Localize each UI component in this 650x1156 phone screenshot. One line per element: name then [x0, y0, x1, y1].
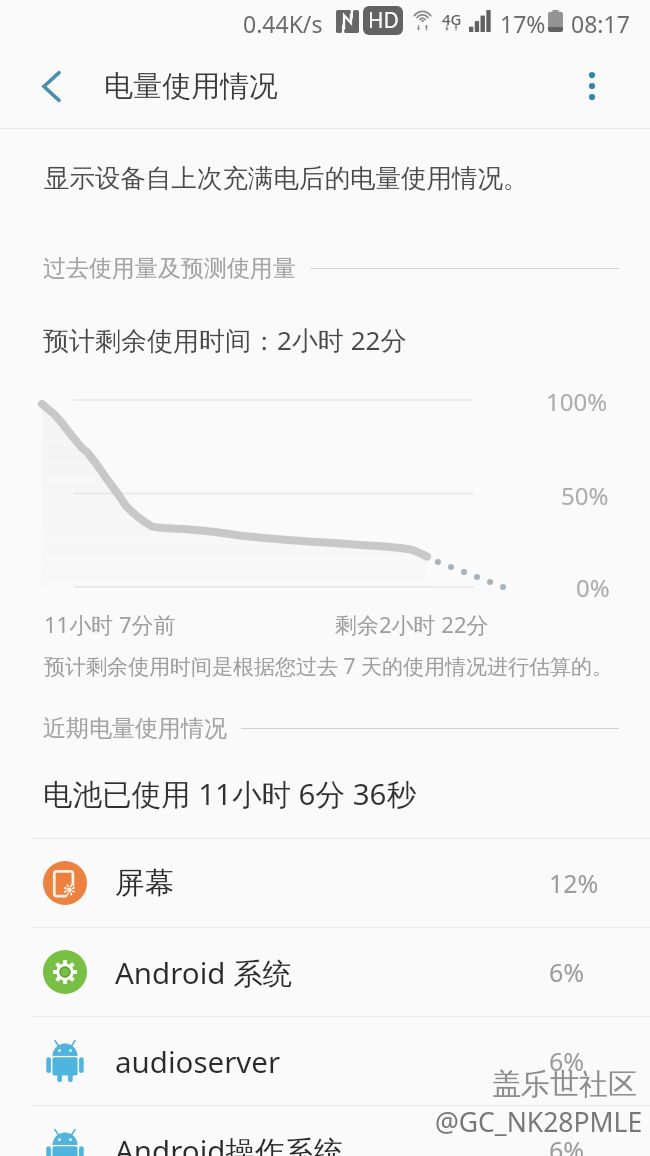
staticText: 预计剩余使用时间：2小时 22分 [43, 322, 407, 358]
staticText: 17% [500, 8, 546, 39]
staticText: 50% [561, 479, 609, 512]
staticText: 100% [546, 385, 608, 418]
button[interactable]: Android 系统 [0, 928, 650, 1016]
button[interactable]: More options [558, 42, 626, 130]
staticText: HD [368, 6, 399, 35]
staticText: audioserver [115, 1041, 281, 1081]
staticText: 近期电量使用情况 [43, 714, 227, 743]
staticText: 显示设备自上次充满电后的电量使用情况。 [44, 162, 529, 194]
button[interactable]: audioserver [0, 1017, 650, 1105]
staticText: 11小时 7分前 [44, 609, 176, 639]
staticText: 08:17 [571, 8, 630, 39]
staticText: @GC_NK28PMLE [435, 1104, 643, 1140]
staticText: 0.44K/s [243, 8, 323, 39]
button[interactable]: Android操作系统 [0, 1106, 650, 1156]
button[interactable]: Back [16, 42, 86, 130]
staticText: 12% [549, 866, 599, 900]
button[interactable]: 屏幕 [0, 839, 650, 927]
staticText: 6% [549, 1133, 585, 1156]
staticText: 剩余2小时 22分 [335, 609, 489, 639]
staticText: Android 系统 [115, 952, 293, 992]
staticText: 电池已使用 11小时 6分 36秒 [43, 773, 416, 813]
staticText: 0% [576, 571, 610, 604]
staticText: 预计剩余使用时间是根据您过去 7 天的使用情况进行估算的。 [44, 652, 613, 681]
staticText: 6% [549, 1044, 585, 1078]
staticText: 电量使用情况 [104, 68, 278, 105]
staticText: 屏幕 [115, 865, 174, 902]
staticText: 4G [442, 9, 461, 29]
staticText: 过去使用量及预测使用量 [43, 254, 296, 283]
staticText: 盖乐世社区 [492, 1066, 637, 1103]
staticText: 6% [549, 955, 585, 989]
staticText: Android操作系统 [115, 1130, 344, 1156]
